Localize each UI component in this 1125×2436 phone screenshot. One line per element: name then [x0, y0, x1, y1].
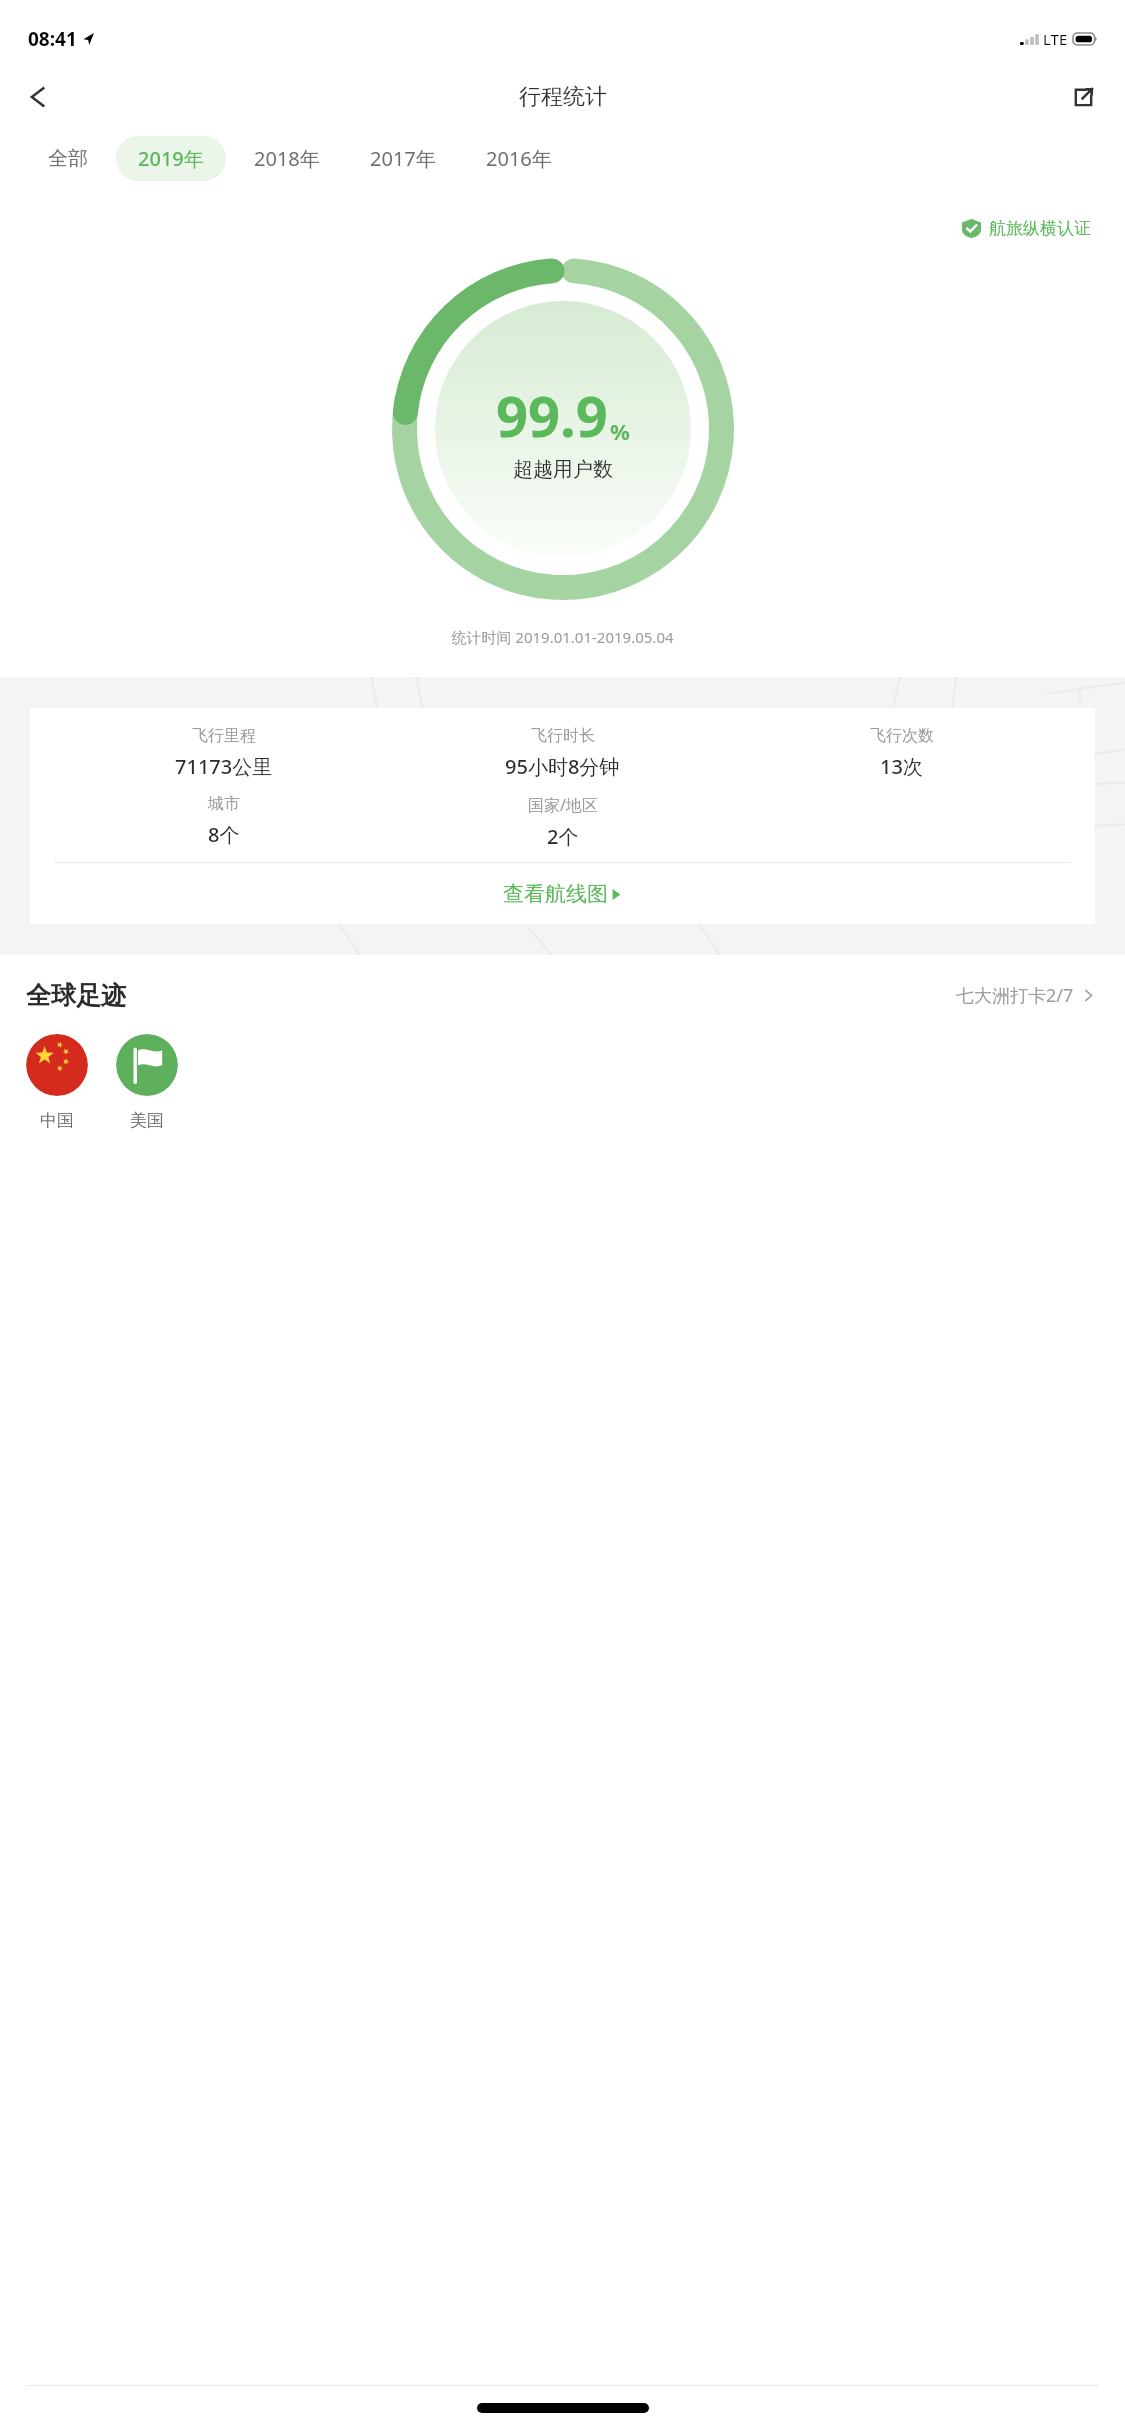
button[interactable]: 查看航线图 — [54, 863, 1071, 924]
staticText: 飞行时长 — [531, 726, 595, 746]
staticText: 美国 — [130, 1110, 164, 1131]
button[interactable]: 2016年 — [464, 136, 574, 181]
staticText: 2018年 — [254, 145, 320, 172]
staticText: 飞行里程 — [192, 726, 256, 746]
button[interactable]: 分享 — [1055, 69, 1111, 125]
staticText: 95小时8分钟 — [505, 753, 620, 780]
staticText: 全部 — [48, 146, 88, 171]
staticText: 8个 — [208, 821, 240, 848]
button[interactable]: 航旅纵横认证 — [958, 214, 1095, 243]
button[interactable]: 七大洲打卡2/7 — [952, 979, 1099, 1012]
staticText: 七大洲打卡2/7 — [956, 983, 1074, 1008]
staticText: LTE — [1043, 29, 1068, 49]
staticText: 查看航线图 — [503, 881, 608, 907]
staticText: 08:41 — [28, 26, 77, 52]
button[interactable]: 2018年 — [232, 136, 342, 181]
staticText: 2019年 — [138, 145, 204, 172]
staticText: 13次 — [880, 753, 923, 780]
staticText: 中国 — [40, 1110, 74, 1131]
staticText: 2017年 — [370, 145, 436, 172]
staticText: 全球足迹 — [26, 980, 126, 1011]
staticText: 2016年 — [486, 145, 552, 172]
staticText: % — [610, 416, 630, 446]
button[interactable]: 2017年 — [348, 136, 458, 181]
staticText: 航旅纵横认证 — [989, 218, 1091, 239]
staticText: 99.9 — [496, 377, 608, 453]
button[interactable]: 美国 — [116, 1034, 178, 1131]
button[interactable]: 返回 — [10, 69, 66, 125]
staticText: 飞行次数 — [870, 726, 934, 746]
staticText: 行程统计 — [519, 83, 607, 111]
staticText: 2个 — [547, 823, 579, 850]
button[interactable]: 中国 — [26, 1034, 88, 1131]
staticText: 统计时间 2019.01.01-2019.05.04 — [0, 627, 1125, 647]
staticText: 71173公里 — [175, 753, 273, 780]
button[interactable]: 全部 — [26, 137, 110, 180]
button[interactable]: 2019年 — [116, 136, 226, 181]
staticText: 超越用户数 — [513, 457, 613, 482]
staticText: 城市 — [208, 794, 240, 814]
staticText: 国家/地区 — [528, 794, 598, 816]
